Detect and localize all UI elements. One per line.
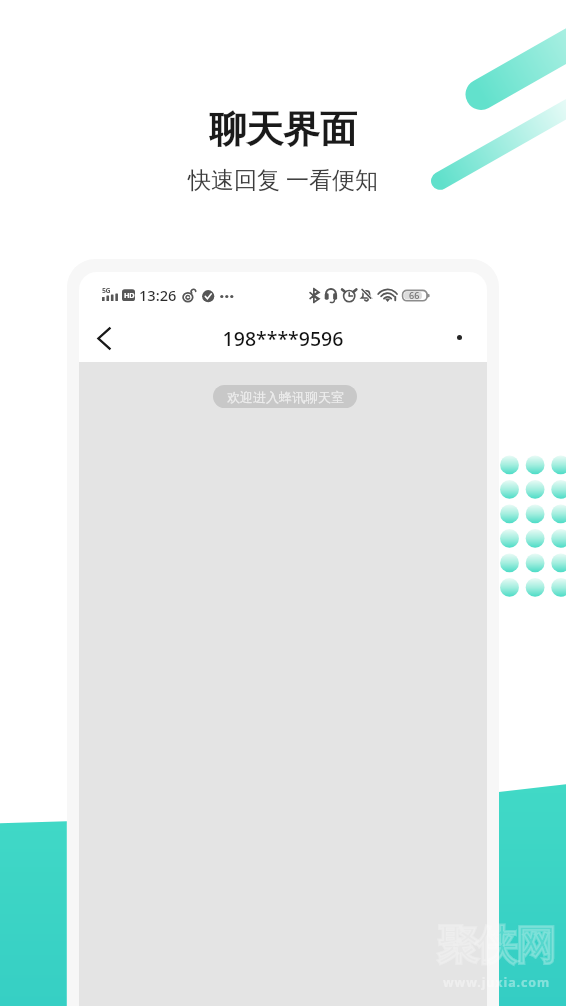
staticText: 欢迎进入蜂讯聊天室 (227, 389, 344, 405)
staticText: 聚侠网 (438, 920, 555, 970)
button[interactable]: More options (444, 322, 474, 352)
staticText: www.juxia.com (443, 974, 551, 991)
staticText: 聚侠网 (438, 920, 555, 970)
staticText: 快速回复 一看便知 (0, 163, 566, 194)
staticText: 66 (409, 289, 420, 301)
staticText: 198****9596 (79, 325, 487, 352)
staticText: 13:26 (139, 285, 177, 305)
staticText: HD (124, 290, 135, 300)
button[interactable]: Back (85, 319, 123, 357)
staticText: 5G (102, 286, 111, 296)
staticText: 聊天界面 (0, 106, 566, 153)
